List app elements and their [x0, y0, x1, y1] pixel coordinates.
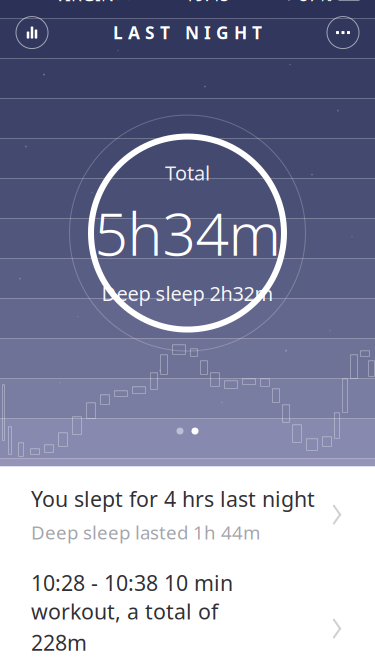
button[interactable]: Statistics [10, 10, 54, 54]
staticText: 228m [31, 628, 87, 657]
staticText: Total [165, 159, 210, 186]
staticText: L A S T N I G H T [113, 21, 262, 44]
staticText: Deep sleep 2h32m [101, 280, 273, 307]
button[interactable]: 10:28 - 10:38 10 min workout, a total of [0, 569, 375, 667]
staticText: 5h34m [94, 194, 280, 272]
staticText: 10:28 - 10:38 10 min workout, a total of [31, 569, 233, 625]
staticText: 87% [298, 0, 332, 6]
button[interactable]: More options [321, 10, 365, 54]
button[interactable]: You slept for 4 hrs last night [0, 484, 375, 545]
staticText: VIRGIN [55, 0, 114, 6]
staticText: Deep sleep lasted 1h 44m [31, 520, 260, 545]
staticText: You slept for 4 hrs last night [31, 484, 315, 513]
staticText: 19:45 [185, 0, 230, 6]
